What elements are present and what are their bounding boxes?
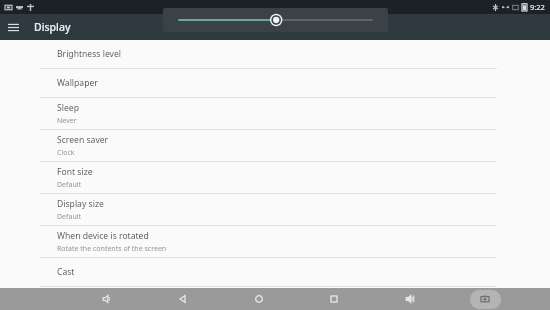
button[interactable]: Font size xyxy=(0,162,550,194)
staticText: Display size xyxy=(57,198,104,210)
button[interactable]: Open navigation menu xyxy=(0,14,26,40)
button[interactable]: Recent apps xyxy=(318,288,350,310)
staticText: Cast xyxy=(57,266,75,278)
button[interactable]: Volume up xyxy=(394,288,426,310)
staticText: Never xyxy=(57,116,77,126)
button[interactable]: HDMI xyxy=(0,287,550,310)
staticText: Rotate the contents of the screen xyxy=(57,244,167,254)
button[interactable]: Screenshot xyxy=(469,288,501,310)
button[interactable]: Home xyxy=(243,288,275,310)
staticText: Default xyxy=(57,212,82,222)
button[interactable]: Cast xyxy=(0,258,550,287)
staticText: Brightness level xyxy=(57,48,121,60)
staticText: Display xyxy=(34,20,71,34)
staticText: Wallpaper xyxy=(57,77,98,89)
staticText: 9:22 xyxy=(530,2,545,12)
button[interactable]: Back xyxy=(167,288,199,310)
staticText: Sleep xyxy=(57,102,79,114)
button[interactable]: Brightness level xyxy=(0,40,550,69)
button[interactable]: Sleep xyxy=(0,98,550,130)
button[interactable]: Brightness slider xyxy=(163,8,388,32)
staticText: Screen saver xyxy=(57,134,109,146)
staticText: Font size xyxy=(57,166,93,178)
button[interactable]: Display size xyxy=(0,194,550,226)
staticText: Clock xyxy=(57,148,75,158)
button[interactable]: When device is rotated xyxy=(0,226,550,258)
button[interactable]: Wallpaper xyxy=(0,69,550,98)
button[interactable]: Screen saver xyxy=(0,130,550,162)
staticText: When device is rotated xyxy=(57,230,149,242)
button[interactable]: Volume down xyxy=(91,288,123,310)
staticText: Default xyxy=(57,180,82,190)
